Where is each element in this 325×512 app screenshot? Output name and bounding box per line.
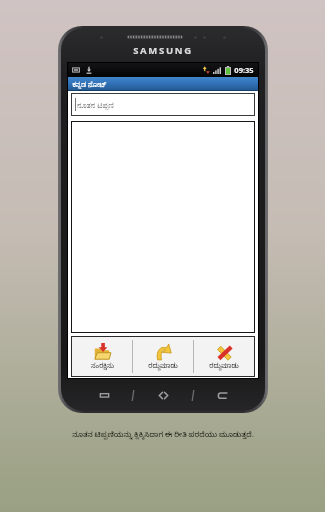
button[interactable]: ರದ್ದುಮಾಡು [133,337,193,376]
button[interactable]: ಸಂರಕ್ಷಿಸು [72,337,132,376]
button[interactable]: Back [208,387,236,403]
staticText: ನೂತನ ಟಿಪ್ಪಣಿಯನ್ನು ಕ್ಲಿಕ್ಕಿಸಿದಾಗ ಈ ರೀತಿ ಪ… [72,429,254,441]
staticText: SAMSUNG [133,44,193,57]
staticText: ಸಂರಕ್ಷಿಸು [91,363,114,371]
button[interactable]: Home [149,387,177,403]
staticText: ರದ್ದುಮಾಡು [209,363,239,371]
staticText: 09:35 [234,65,254,75]
button[interactable]: ನೂತನ ಟಿಪ್ಪಣಿ [72,94,254,115]
staticText: ರದ್ದುಮಾಡು [148,363,178,371]
staticText: ನೂತನ ಟಿಪ್ಪಣಿ [77,99,114,110]
button[interactable]: Recent apps [90,387,118,403]
button[interactable]: ರದ್ದುಮಾಡು [194,337,254,376]
staticText: ಕನ್ನಡ ನೋಟ್ [72,79,107,89]
